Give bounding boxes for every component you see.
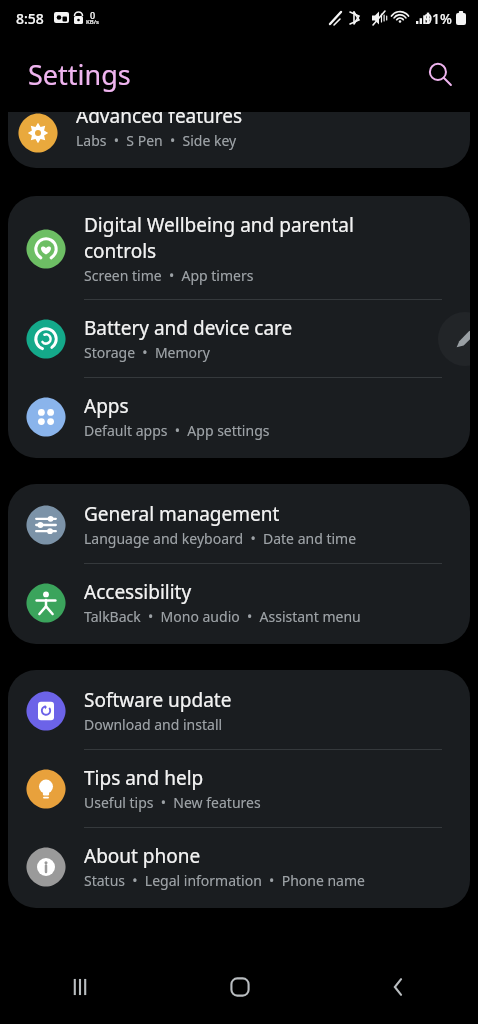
staticText: Labs • S Pen • Side key [76,131,237,150]
staticText: About phone [84,843,201,869]
staticText: KB/s [86,18,99,26]
staticText: TalkBack • Mono audio • Assistant menu [84,607,361,626]
staticText: Advanced features [76,112,243,129]
staticText: Digital Wellbeing and parental controls [84,212,354,264]
staticText: Useful tips • New features [84,793,261,812]
button[interactable]: Accessibility [8,564,470,644]
button[interactable]: About phone [8,828,470,908]
button[interactable]: Back [319,950,478,1024]
staticText: 91% [424,9,452,28]
button[interactable]: Software update [8,670,470,749]
staticText: 8:58 [16,9,44,28]
staticText: Screen time • App timers [84,266,254,285]
staticText: Status • Legal information • Phone name [84,871,365,890]
button[interactable]: Advanced features [8,112,470,168]
staticText: Tips and help [84,765,204,791]
button[interactable]: Digital Wellbeing and parental controls [8,196,470,299]
button[interactable]: Search [416,50,464,98]
staticText: 0 [90,9,96,21]
staticText: Accessibility [84,579,192,605]
button[interactable]: Recent apps [0,950,160,1024]
button[interactable]: Battery and device care [8,300,470,377]
button[interactable]: Edit [438,312,470,366]
staticText: Settings [28,56,131,93]
button[interactable]: General management [8,484,470,563]
staticText: Storage • Memory [84,343,210,362]
staticText: Default apps • App settings [84,421,270,440]
button[interactable]: Tips and help [8,750,470,827]
staticText: Language and keyboard • Date and time [84,529,357,548]
button[interactable]: Home [160,950,319,1024]
staticText: Battery and device care [84,315,293,341]
staticText: Download and install [84,715,223,734]
staticText: Software update [84,687,232,713]
button[interactable]: Apps [8,378,470,458]
staticText: Apps [84,393,129,419]
staticText: General management [84,501,280,527]
